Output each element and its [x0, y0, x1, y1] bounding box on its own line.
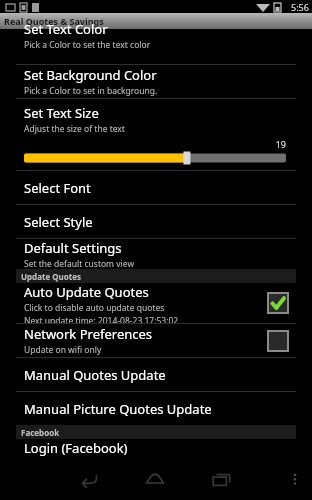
staticText: Real Quotes & Sayings — [4, 15, 104, 27]
staticText: Manual Quotes Update — [24, 366, 166, 384]
staticText: Auto Update Quotes — [24, 283, 149, 301]
staticText: Next update time: 2014-08-23 17:53:02 — [24, 315, 179, 323]
button[interactable]: Network Preferences — [268, 331, 288, 351]
staticText: Select Font — [24, 179, 91, 197]
staticText: Login (Facebook) — [24, 439, 128, 457]
staticText: Set Text Size — [24, 104, 99, 122]
staticText: Set the default custom view — [24, 258, 135, 269]
button[interactable]: Manual Quotes Update — [0, 358, 312, 391]
button[interactable]: Set Text Size — [0, 99, 312, 170]
button[interactable]: Manual Picture Quotes Update — [0, 392, 312, 425]
button[interactable]: More options — [280, 464, 310, 494]
button[interactable]: Set Background Color — [0, 65, 312, 98]
button[interactable]: Auto Update Quotes — [268, 293, 288, 313]
button[interactable]: Default Settings — [0, 239, 312, 269]
staticText: Facebook — [21, 427, 60, 438]
staticText: Update on wifi only — [24, 344, 102, 356]
staticText: 5:56 — [291, 1, 309, 13]
button[interactable]: Auto Update Quotes — [0, 283, 312, 323]
button[interactable]: Select Font — [0, 171, 312, 204]
button[interactable]: Back — [66, 458, 110, 500]
staticText: Default Settings — [24, 239, 122, 257]
staticText: Adjust the size of the text — [24, 123, 125, 135]
button[interactable]: Recent apps — [200, 458, 244, 500]
staticText: Network Preferences — [24, 325, 153, 343]
staticText: Click to disable auto update quotes — [24, 302, 165, 314]
staticText: Pick a Color to set the text color — [24, 39, 151, 51]
staticText: 19 — [0, 138, 286, 150]
staticText: Manual Picture Quotes Update — [24, 400, 212, 418]
staticText: Set Background Color — [24, 66, 157, 84]
button[interactable]: Home — [133, 458, 177, 500]
staticText: Select Style — [24, 213, 93, 231]
button[interactable]: Set Text Color — [0, 29, 312, 64]
button[interactable]: Select Style — [0, 205, 312, 238]
staticText: Set Text Color — [24, 20, 108, 38]
button[interactable]: Login (Facebook) — [0, 439, 312, 458]
button[interactable]: Network Preferences — [0, 324, 312, 357]
staticText: Pick a Color to set in backgroung. — [24, 85, 158, 97]
staticText: Update Quotes — [21, 271, 82, 282]
